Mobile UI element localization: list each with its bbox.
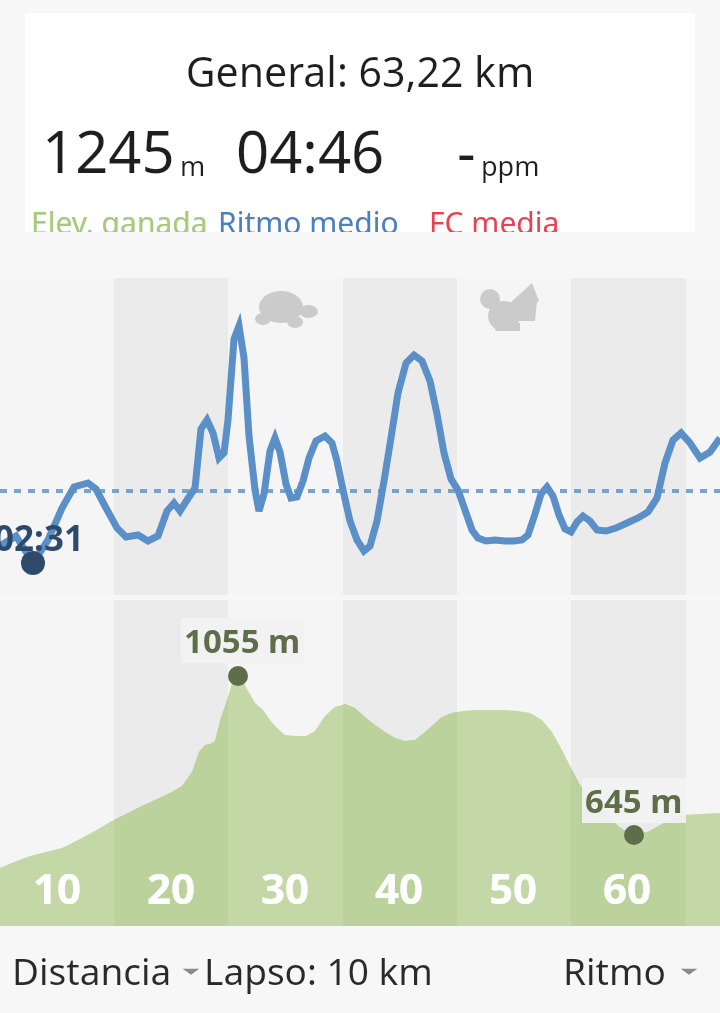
button[interactable]: Grafico de elevacion — [0, 600, 720, 926]
button[interactable]: General: 63,22 km — [25, 13, 695, 232]
staticText: Elev. ganada — [31, 202, 208, 232]
button[interactable]: Distancia — [0, 945, 202, 995]
staticText: FC media — [429, 202, 560, 232]
button[interactable]: Ritmo — [563, 945, 720, 995]
staticText: Ritmo medio — [218, 202, 399, 232]
staticText: ppm — [481, 147, 540, 184]
button[interactable]: Lapso: 10 km — [204, 945, 433, 995]
button[interactable]: Grafico de ritmo — [0, 278, 720, 595]
staticText: 60 — [603, 859, 652, 916]
staticText: 50 — [489, 859, 538, 916]
staticText: m — [180, 147, 206, 184]
staticText: 40 — [375, 859, 424, 916]
staticText: - — [457, 111, 476, 190]
staticText: 20 — [147, 859, 196, 916]
staticText: Lapso: 10 km — [204, 945, 433, 995]
staticText: 1055 m — [184, 618, 301, 663]
staticText: Ritmo — [563, 945, 666, 995]
staticText: Distancia — [12, 945, 172, 995]
staticText: 10 — [33, 859, 82, 916]
staticText: 1245 — [42, 111, 175, 190]
staticText: 04:46 — [236, 111, 385, 190]
staticText: 30 — [261, 859, 310, 916]
staticText: General: 63,22 km — [25, 43, 695, 99]
staticText: 645 m — [585, 778, 683, 823]
staticText: 02:31 — [0, 514, 84, 562]
